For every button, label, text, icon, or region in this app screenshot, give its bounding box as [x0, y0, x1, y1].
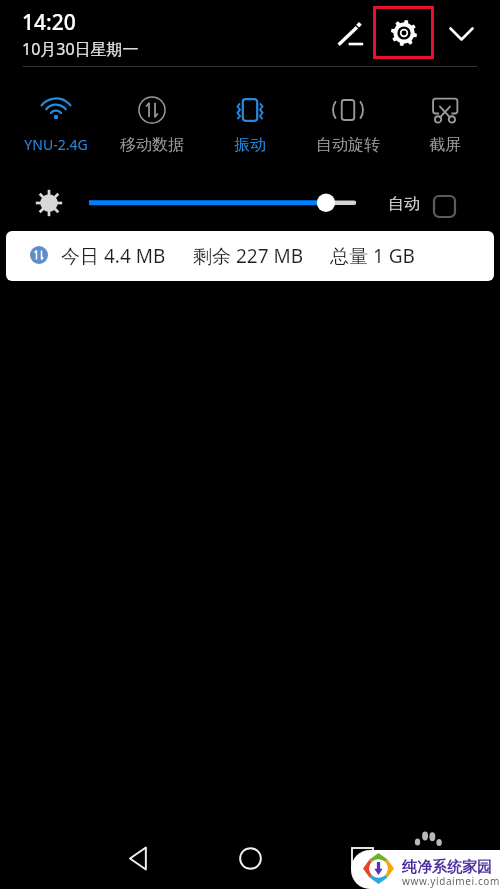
staticText: 今日 4.4 MB	[61, 243, 166, 269]
staticText: 自动	[388, 194, 420, 214]
staticText: 10月30日星期一	[22, 38, 139, 60]
button[interactable]: Recents	[334, 830, 390, 886]
button[interactable]: 今日 4.4 MB	[6, 231, 494, 281]
button[interactable]: YNU-2.4G	[8, 88, 104, 154]
button[interactable]: Brightness	[80, 183, 370, 223]
button[interactable]: Back	[110, 830, 166, 886]
staticText: www.yidaimei.com	[402, 874, 500, 888]
staticText: 总量 1 GB	[330, 243, 415, 269]
button[interactable]: Home	[222, 830, 278, 886]
button[interactable]: Settings	[373, 6, 434, 59]
button[interactable]: 移动数据	[104, 88, 200, 155]
button[interactable]: 自动旋转	[300, 88, 396, 155]
staticText: 振动	[234, 135, 266, 155]
button[interactable]: 振动	[202, 88, 298, 155]
staticText: YNU-2.4G	[24, 135, 88, 154]
staticText: 自动旋转	[316, 135, 380, 155]
staticText: 纯净系统家园	[402, 858, 492, 877]
button[interactable]: Expand	[437, 9, 485, 57]
staticText: 剩余 227 MB	[193, 243, 304, 269]
button[interactable]: Auto brightness	[429, 191, 460, 222]
staticText: 14:20	[22, 8, 76, 37]
staticText: 截屏	[429, 135, 461, 155]
staticText: 移动数据	[120, 135, 184, 155]
button[interactable]: 截屏	[397, 88, 493, 155]
button[interactable]: Edit	[326, 9, 374, 57]
